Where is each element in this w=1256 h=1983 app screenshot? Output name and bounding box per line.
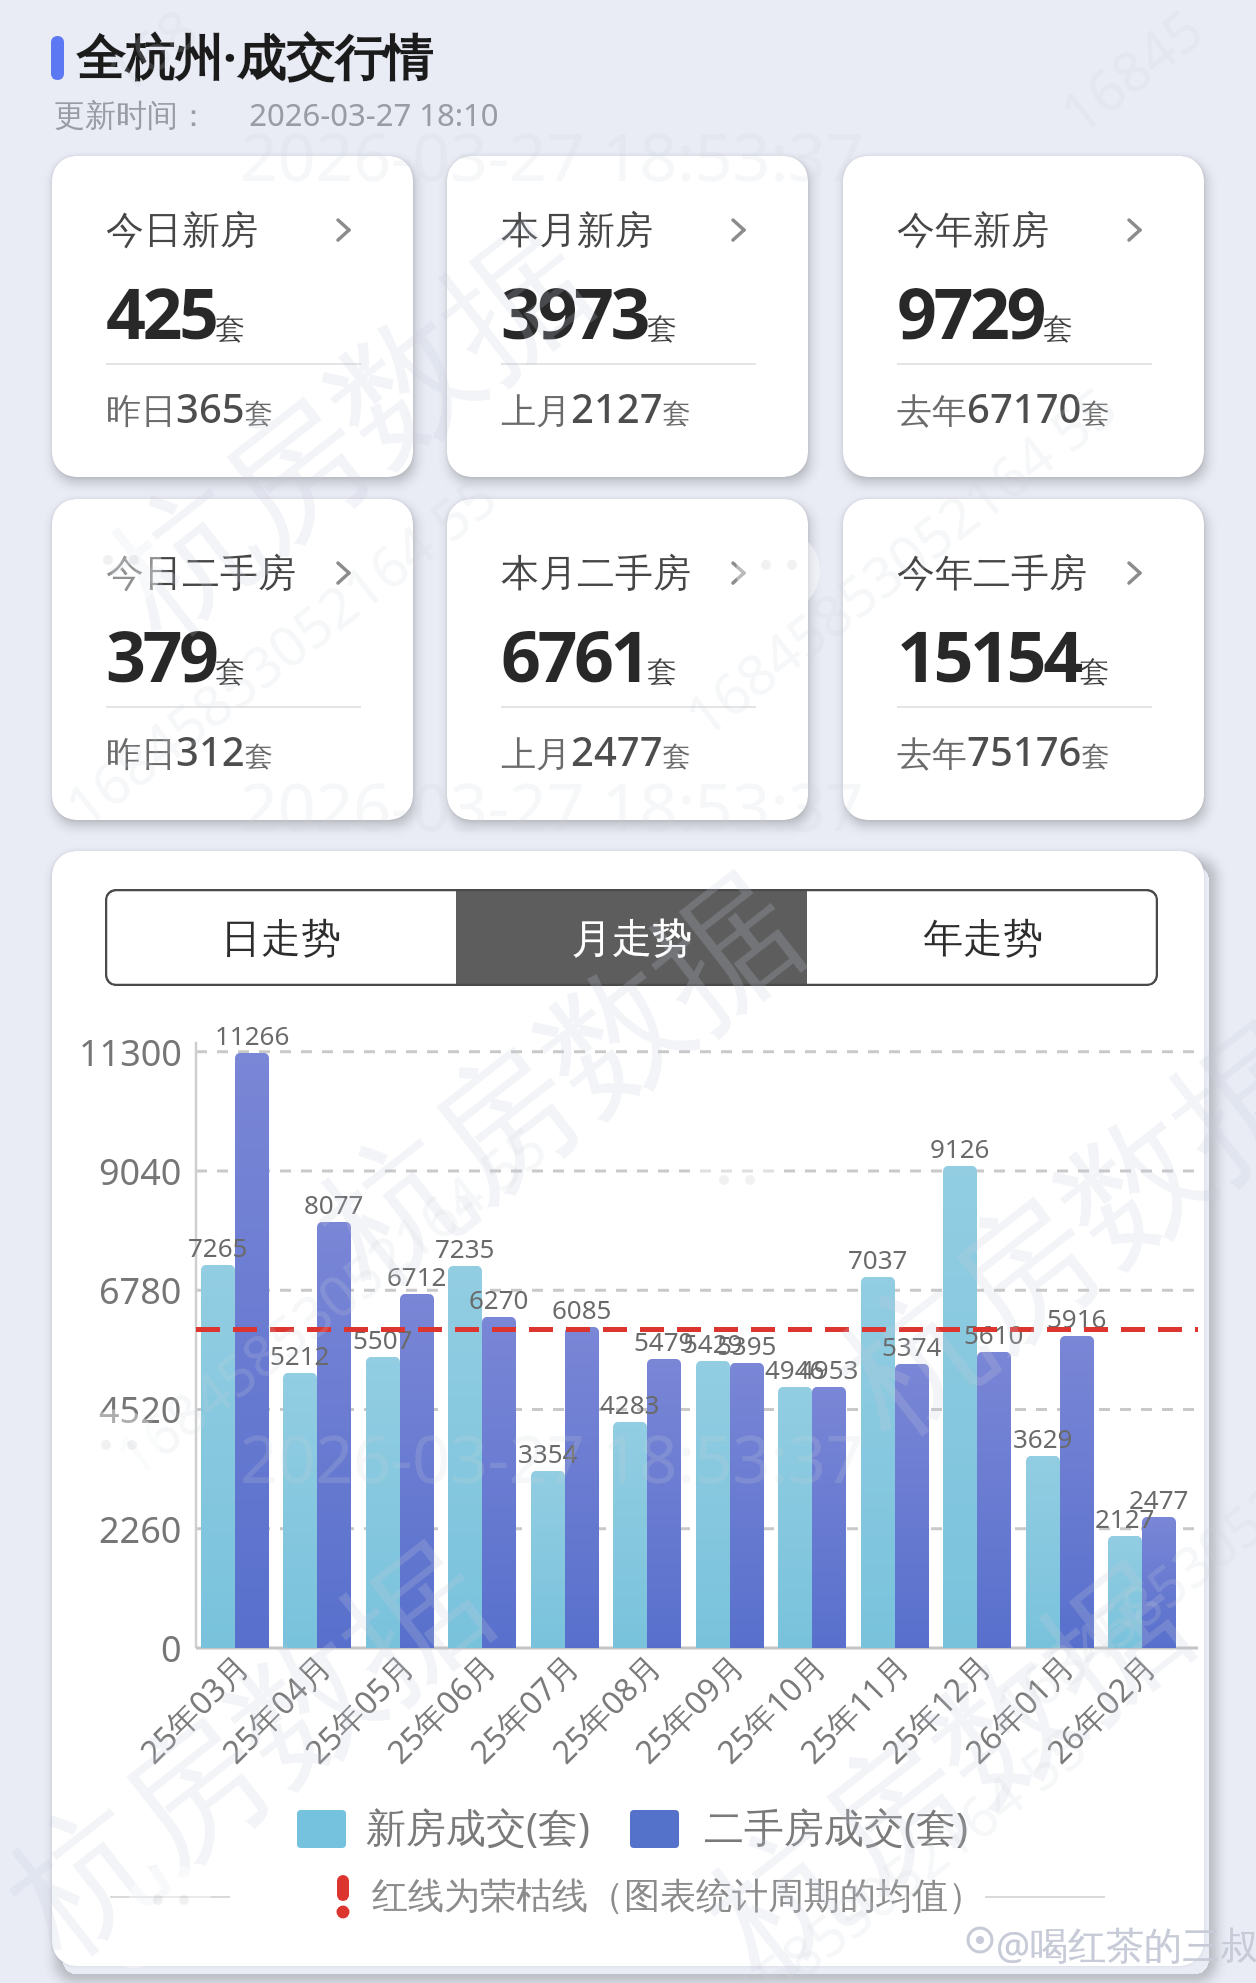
button[interactable]: 今年二手房	[843, 499, 1204, 820]
button[interactable]: 日走势	[105, 889, 456, 986]
staticText: 2026-03-27 18:53:37	[240, 760, 864, 850]
staticText: 9729套	[897, 264, 1074, 359]
staticText: 年走势	[923, 913, 1043, 963]
staticText: 今日新房	[106, 206, 258, 254]
button[interactable]: 年走势	[807, 889, 1158, 986]
staticText: 25年10月	[707, 1644, 836, 1773]
staticText: 杭房数据	[675, 1528, 1225, 1983]
staticText: 杭房数据	[805, 988, 1256, 1472]
staticText: 25年04月	[212, 1644, 341, 1773]
staticText: 25年11月	[790, 1644, 919, 1773]
staticText: 4283	[600, 1386, 660, 1416]
staticText: 上月2477套	[501, 723, 691, 777]
staticText: 本月新房	[501, 206, 653, 254]
staticText: 二手房成交(套)	[704, 1799, 968, 1854]
staticText: 昨日312套	[106, 723, 273, 777]
staticText: 8077	[304, 1186, 364, 1216]
button[interactable]: 今日二手房	[52, 499, 413, 820]
staticText: 25年12月	[872, 1644, 1001, 1773]
staticText: 9126	[930, 1130, 990, 1160]
staticText: 5374	[882, 1328, 942, 1358]
staticText: 7037	[848, 1241, 908, 1271]
staticText: 上月2127套	[501, 380, 691, 434]
staticText: 5479	[634, 1323, 694, 1353]
staticText: 全杭州·成交行情	[76, 23, 433, 90]
staticText: 4946	[765, 1351, 825, 1381]
staticText: 杭房数据	[75, 188, 625, 672]
staticText: 2026-03-27 18:53:37	[240, 1412, 864, 1502]
staticText: 杭房数据	[285, 838, 835, 1322]
button[interactable]: 本月新房	[447, 156, 808, 477]
staticText: 25年07月	[460, 1644, 589, 1773]
staticText: 月走势	[572, 913, 692, 963]
staticText: 5610	[964, 1316, 1024, 1346]
staticText: 去年67170套	[897, 380, 1110, 434]
staticText: 5916	[1047, 1300, 1107, 1330]
staticText: 11266	[215, 1017, 290, 1047]
staticText: 6085	[552, 1291, 612, 1321]
staticText: 168	[89, 0, 212, 109]
staticText: 3973套	[501, 264, 678, 359]
staticText: 2477	[1129, 1481, 1189, 1511]
staticText: 本月二手房	[501, 549, 691, 597]
staticText: 6712	[387, 1258, 447, 1288]
staticText: 16845853052164 55	[49, 457, 511, 842]
staticText: 今年二手房	[897, 549, 1087, 597]
staticText: 16845853052164 55	[99, 1107, 561, 1492]
staticText: 杭房数据	[0, 1508, 525, 1983]
staticText: 16845853052164 55	[639, 1707, 1101, 1983]
staticText: 3629	[1013, 1420, 1073, 1450]
staticText: 新房成交(套)	[366, 1799, 590, 1854]
staticText: 15154套	[897, 607, 1110, 702]
staticText: 25年05月	[295, 1644, 424, 1773]
staticText: 4520	[99, 1385, 182, 1433]
staticText: 379套	[106, 607, 246, 702]
staticText: 9040	[99, 1147, 182, 1195]
staticText: 6780	[99, 1266, 182, 1314]
staticText: 25年03月	[130, 1644, 259, 1773]
staticText: 16845853052164 55	[669, 367, 1131, 752]
staticText: 6270	[469, 1281, 529, 1311]
staticText: 5507	[353, 1321, 413, 1351]
staticText: @喝红茶的三叔	[996, 1918, 1256, 1970]
staticText: 26年01月	[955, 1644, 1084, 1773]
staticText: 2026-03-27 18:53:37	[240, 110, 864, 200]
staticText: 5212	[270, 1337, 330, 1367]
staticText: 5429	[683, 1325, 743, 1355]
staticText: 日走势	[221, 913, 341, 963]
staticText: 26年02月	[1037, 1644, 1166, 1773]
button[interactable]: 今日新房	[52, 156, 413, 477]
staticText: 11300	[79, 1028, 182, 1076]
staticText: 7265	[188, 1229, 248, 1259]
staticText: 今年新房	[897, 206, 1049, 254]
staticText: 25年09月	[625, 1644, 754, 1773]
staticText: 7235	[435, 1230, 495, 1260]
staticText: 昨日365套	[106, 380, 273, 434]
staticText: 16845853052164 55	[979, 1357, 1256, 1742]
staticText: 今日二手房	[106, 549, 296, 597]
button[interactable]: 月走势	[456, 889, 807, 986]
staticText: 25年06月	[377, 1644, 506, 1773]
staticText: 红线为荣枯线（图表统计周期的均值）	[372, 1873, 984, 1918]
staticText: 6761套	[501, 607, 678, 702]
button[interactable]: 本月二手房	[447, 499, 808, 820]
staticText: 25年08月	[542, 1644, 671, 1773]
staticText: 2260	[99, 1505, 182, 1553]
staticText: 2127	[1095, 1500, 1155, 1530]
staticText: 0	[161, 1624, 182, 1672]
staticText: 3354	[518, 1435, 578, 1465]
staticText: 更新时间： 2026-03-27 18:10	[54, 93, 499, 135]
staticText: 425套	[106, 264, 246, 359]
button[interactable]: 今年新房	[843, 156, 1204, 477]
staticText: 5395	[717, 1327, 777, 1357]
staticText: 4953	[799, 1351, 859, 1381]
staticText: 去年75176套	[897, 723, 1110, 777]
